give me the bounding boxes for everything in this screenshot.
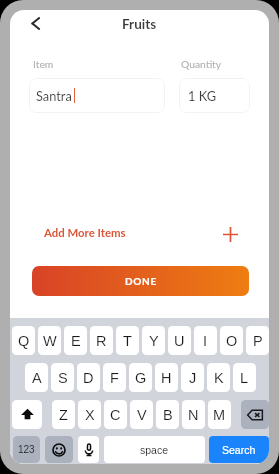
staticText: Z — [59, 407, 68, 423]
button[interactable]: X — [78, 400, 101, 429]
staticText: DONE — [125, 275, 157, 287]
staticText: Item — [33, 58, 54, 70]
button[interactable]: E — [64, 326, 87, 355]
staticText: H — [161, 370, 172, 386]
button[interactable]: Voice input — [78, 436, 99, 463]
staticText: U — [174, 333, 185, 349]
button[interactable]: Add item — [219, 223, 241, 245]
staticText: space — [140, 444, 169, 456]
button[interactable]: 123 — [13, 436, 40, 463]
button[interactable]: G — [129, 363, 152, 392]
other: Backspace — [247, 407, 263, 423]
button[interactable]: M — [208, 400, 231, 429]
button[interactable]: D — [77, 363, 100, 392]
staticText: X — [85, 407, 95, 423]
staticText: R — [96, 333, 107, 349]
staticText: 123 — [18, 444, 35, 455]
button[interactable]: Backspace — [241, 400, 269, 429]
staticText: C — [110, 407, 121, 423]
button[interactable]: R — [90, 326, 113, 355]
button[interactable]: A — [25, 363, 48, 392]
button[interactable]: space — [104, 436, 205, 463]
button[interactable]: N — [182, 400, 205, 429]
button[interactable]: S — [51, 363, 74, 392]
button[interactable]: Q — [12, 326, 35, 355]
button[interactable]: L — [233, 363, 256, 392]
button[interactable]: Z — [52, 400, 75, 429]
staticText: K — [214, 370, 224, 386]
button[interactable]: DONE — [32, 266, 249, 296]
button[interactable]: T — [116, 326, 139, 355]
button[interactable]: I — [194, 326, 217, 355]
staticText: J — [189, 370, 197, 386]
button[interactable]: K — [207, 363, 230, 392]
staticText: 1 KG — [188, 88, 216, 103]
button[interactable]: Back — [22, 10, 48, 36]
staticText: T — [123, 333, 132, 349]
staticText: Fruits — [122, 16, 157, 32]
staticText: Add More Items — [44, 226, 126, 240]
staticText: O — [226, 333, 238, 349]
button[interactable]: H — [155, 363, 178, 392]
other: Emoji — [52, 443, 66, 457]
staticText: N — [188, 407, 199, 423]
staticText: Search — [222, 444, 256, 456]
button[interactable]: Shift — [12, 400, 42, 429]
button[interactable]: Search — [209, 436, 269, 463]
staticText: Q — [18, 333, 30, 349]
button[interactable]: P — [246, 326, 269, 355]
staticText: S — [58, 370, 68, 386]
staticText: I — [203, 333, 208, 349]
button[interactable]: Y — [142, 326, 165, 355]
staticText: Quantity — [181, 58, 222, 70]
staticText: W — [43, 333, 57, 349]
staticText: E — [71, 333, 81, 349]
button[interactable]: C — [104, 400, 127, 429]
button[interactable]: J — [181, 363, 204, 392]
button[interactable]: O — [220, 326, 243, 355]
button[interactable]: V — [130, 400, 153, 429]
staticText: Y — [149, 333, 159, 349]
button[interactable]: U — [168, 326, 191, 355]
staticText: A — [32, 370, 42, 386]
staticText: D — [83, 370, 94, 386]
staticText: P — [253, 333, 263, 349]
button[interactable]: 1 KG — [179, 78, 250, 113]
staticText: G — [135, 370, 147, 386]
staticText: B — [163, 407, 173, 423]
staticText: Santra — [36, 88, 72, 103]
other: Shift — [21, 408, 34, 421]
button[interactable]: B — [156, 400, 179, 429]
button[interactable]: W — [38, 326, 61, 355]
staticText: F — [110, 370, 119, 386]
button[interactable]: F — [103, 363, 126, 392]
staticText: V — [137, 407, 147, 423]
button[interactable]: Santra — [29, 78, 165, 113]
button[interactable]: Add More Items — [44, 222, 126, 244]
staticText: L — [240, 370, 249, 386]
staticText: M — [213, 407, 226, 423]
button[interactable]: Emoji — [45, 436, 73, 463]
